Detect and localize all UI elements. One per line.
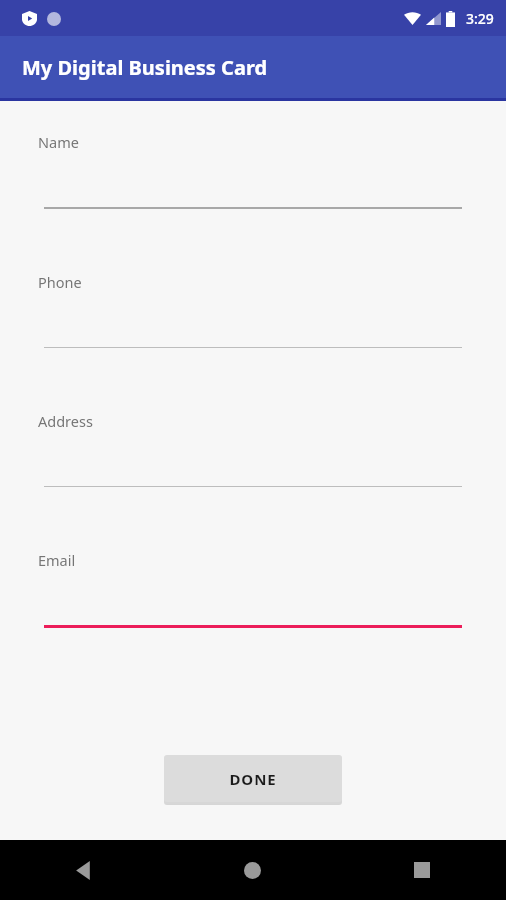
- button[interactable]: Back: [0, 840, 168, 900]
- staticText: 3:29: [466, 9, 494, 28]
- staticText: DONE: [229, 769, 277, 789]
- button[interactable]: DONE: [164, 755, 342, 802]
- staticText: Address: [38, 411, 93, 431]
- button[interactable]: Recent apps: [337, 840, 506, 900]
- button[interactable]: Home: [168, 840, 337, 900]
- button[interactable]: Phone: [0, 272, 506, 411]
- button[interactable]: Name: [0, 132, 506, 272]
- button[interactable]: Address: [0, 411, 506, 550]
- staticText: Email: [38, 550, 76, 570]
- button[interactable]: Email: [0, 550, 506, 691]
- staticText: Phone: [38, 272, 82, 292]
- staticText: My Digital Business Card: [22, 54, 268, 81]
- staticText: Name: [38, 132, 79, 152]
